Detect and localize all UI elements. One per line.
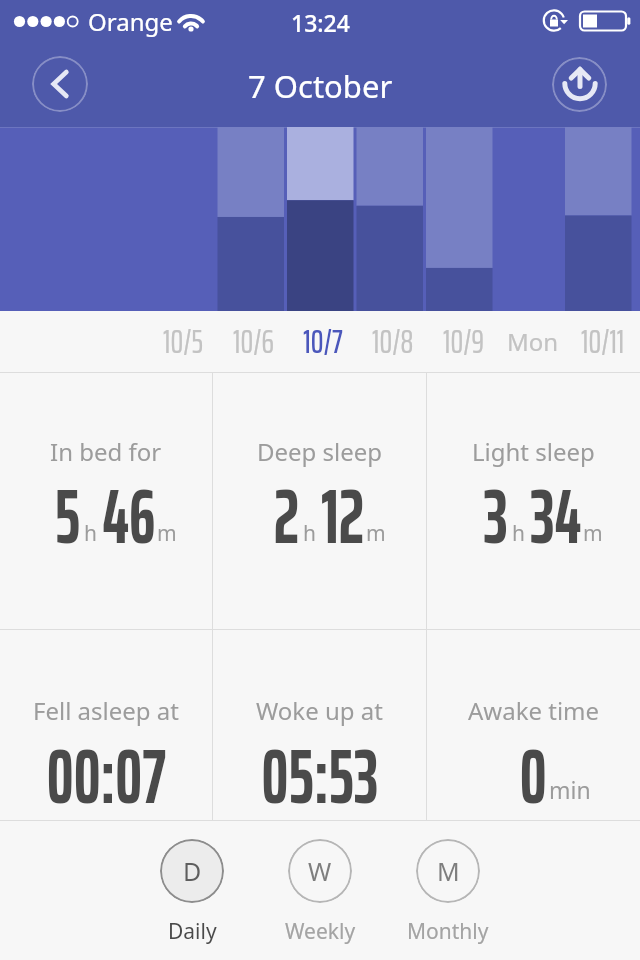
button[interactable]: Back	[32, 56, 88, 112]
staticText: 10/7	[303, 317, 343, 367]
button[interactable]: M	[416, 839, 480, 946]
staticText: Woke up at	[256, 694, 383, 727]
staticText: Fell asleep at	[33, 694, 179, 727]
button[interactable]: Share	[552, 57, 607, 112]
staticText: 13:24	[291, 7, 350, 38]
staticText: 10/9	[443, 317, 484, 367]
button[interactable]: W	[288, 839, 352, 946]
staticText: In bed for	[50, 435, 162, 468]
staticText: 2	[274, 457, 299, 577]
staticText: 10/11	[581, 317, 625, 367]
staticText: h	[303, 519, 316, 548]
staticText: 05:53	[262, 717, 378, 810]
button[interactable]: D	[160, 839, 224, 946]
staticText: min	[549, 774, 591, 805]
button[interactable]: 10/9	[428, 311, 498, 372]
staticText: 7 October	[248, 65, 393, 107]
button[interactable]: 10/5	[148, 311, 218, 372]
button[interactable]: 10/11	[568, 311, 638, 372]
staticText: Monthly	[407, 917, 489, 946]
staticText: 46	[102, 457, 155, 577]
staticText: Orange	[88, 5, 173, 38]
staticText: h	[512, 519, 525, 548]
staticText: 12	[321, 457, 365, 577]
staticText: 10/5	[163, 317, 203, 367]
staticText: 34	[530, 457, 582, 577]
staticText: W	[308, 854, 332, 888]
button[interactable]: 10/6	[218, 311, 288, 372]
staticText: 10/6	[233, 317, 274, 367]
staticText: Deep sleep	[257, 435, 383, 468]
staticText: Weekly	[285, 917, 356, 946]
staticText: h	[84, 519, 97, 548]
staticText: 10/8	[372, 317, 414, 367]
staticText: Mon	[507, 325, 559, 358]
button[interactable]: Mon	[498, 311, 568, 372]
staticText: Awake time	[468, 694, 600, 727]
staticText: m	[157, 519, 177, 548]
staticText: 3	[484, 457, 508, 577]
staticText: 0	[520, 717, 547, 810]
button[interactable]: 10/8	[358, 311, 428, 372]
staticText: 5	[55, 457, 80, 577]
staticText: m	[366, 519, 386, 548]
staticText: Daily	[168, 917, 217, 946]
button[interactable]: 10/7	[288, 311, 358, 372]
staticText: 00:07	[47, 717, 166, 810]
staticText: D	[183, 854, 202, 888]
staticText: m	[583, 519, 603, 548]
staticText: Light sleep	[472, 435, 595, 468]
staticText: M	[437, 854, 460, 888]
